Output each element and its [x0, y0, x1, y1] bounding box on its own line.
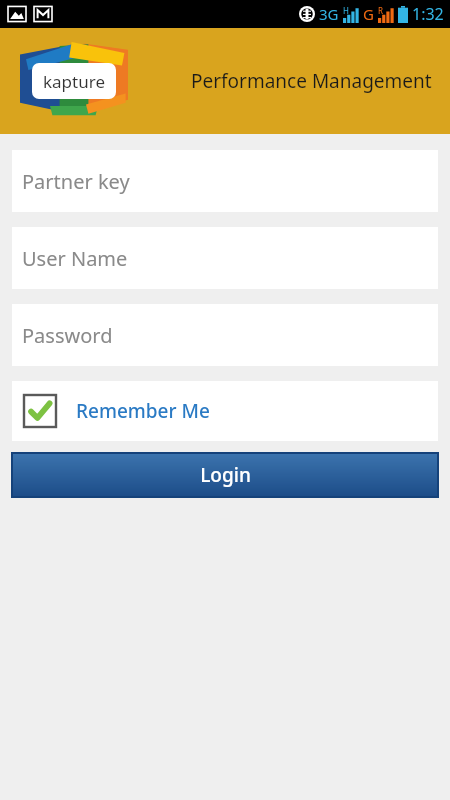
button[interactable]: Remember Me	[12, 381, 438, 441]
staticText: User Name	[22, 245, 128, 272]
staticText: G	[363, 4, 374, 24]
staticText: H	[343, 5, 349, 16]
staticText: Password	[22, 322, 113, 349]
staticText: 3G	[319, 4, 339, 24]
staticText: 1:32	[412, 3, 444, 25]
staticText: Login	[200, 462, 251, 488]
staticText: Performance Management	[191, 68, 432, 94]
button[interactable]: User Name	[12, 227, 438, 289]
staticText: R	[378, 5, 383, 16]
button[interactable]: Password	[12, 304, 438, 366]
button[interactable]: Login	[12, 453, 438, 497]
button[interactable]: Partner key	[12, 150, 438, 212]
staticText: Remember Me	[76, 398, 210, 424]
staticText: kapture	[43, 70, 105, 93]
staticText: Partner key	[22, 168, 130, 195]
